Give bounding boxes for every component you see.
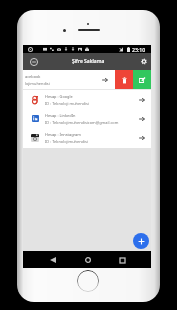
staticText: Hesap : Google [45,94,73,99]
button[interactable]: Delete [115,70,133,90]
staticText: lojimuhendisi [25,81,50,86]
button[interactable]: Add new account [133,233,149,249]
button[interactable]: Back [47,254,59,266]
staticText: acebook [25,74,41,79]
staticText: Hesap : LinkedIn [45,113,76,118]
button[interactable]: Hesap : LinkedIn [23,109,151,128]
staticText: ID : Teknolojimuhendisi [45,139,88,144]
button[interactable]: Back [28,53,40,70]
button[interactable]: Home [82,254,94,266]
button[interactable]: Edit [133,70,151,90]
staticText: ID : Teknolojimuhendisicom@gmail.com [45,120,119,125]
staticText: Hesap : İnnstagram [45,132,81,137]
staticText: 23:10 [132,46,146,53]
button[interactable]: Hesap : Google [23,90,151,109]
staticText: ID : Teknoloji muhendisi [45,101,89,106]
staticText: Şifre Saklama [72,58,105,65]
button[interactable]: Recent apps [116,254,128,266]
button[interactable]: Settings [138,56,149,67]
button[interactable]: Hesap : İnnstagram [23,128,151,147]
